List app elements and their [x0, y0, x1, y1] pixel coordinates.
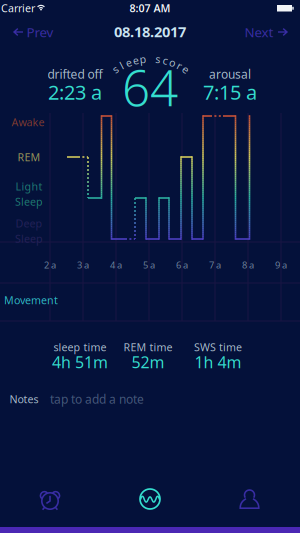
- staticText: tap to add a note: [50, 391, 144, 407]
- staticText: 7:15 a: [203, 79, 257, 105]
- staticText: s: [155, 52, 160, 66]
- staticText: sleep time: [53, 340, 106, 354]
- staticText: Awake: [11, 115, 44, 129]
- staticText: e: [183, 62, 189, 76]
- button[interactable]: tap to add a note: [0, 0, 300, 533]
- staticText: 8 a: [242, 259, 254, 271]
- staticText: 4 a: [110, 259, 122, 271]
- staticText: Next: [244, 23, 273, 41]
- staticText: 52m: [131, 351, 164, 373]
- staticText: 7 a: [209, 259, 221, 271]
- button[interactable]: Profile: [0, 0, 300, 533]
- button[interactable]: Next: [0, 0, 300, 533]
- staticText: SWS time: [194, 340, 242, 354]
- staticText: Light: [15, 179, 42, 193]
- staticText: e: [133, 53, 139, 67]
- staticText: 08.18.2017: [114, 22, 186, 41]
- staticText: s: [113, 62, 118, 76]
- staticText: 1h 4m: [194, 351, 241, 373]
- staticText: REM: [17, 150, 40, 164]
- staticText: 6 a: [176, 259, 188, 271]
- staticText: 3 a: [77, 259, 89, 271]
- staticText: e: [125, 55, 131, 70]
- staticText: 9 a: [275, 259, 287, 271]
- staticText: REM time: [123, 340, 172, 354]
- staticText: drifted off: [47, 66, 102, 82]
- staticText: 2 a: [44, 259, 56, 271]
- staticText: Movement: [4, 293, 58, 307]
- staticText: Sleep: [15, 194, 43, 209]
- staticText: l: [120, 58, 123, 73]
- staticText: p: [139, 52, 146, 66]
- button[interactable]: Prev: [0, 0, 300, 533]
- staticText: 2:23 a: [48, 79, 102, 105]
- staticText: r: [177, 58, 181, 73]
- staticText: Sleep: [15, 231, 43, 246]
- staticText: 4h 51m: [52, 351, 108, 373]
- staticText: o: [169, 55, 175, 70]
- staticText: 64: [122, 54, 178, 120]
- button[interactable]: Sleep: [0, 0, 300, 533]
- staticText: arousal: [209, 66, 251, 82]
- button[interactable]: Alarms: [0, 0, 300, 533]
- staticText: Prev: [26, 23, 53, 41]
- staticText: 5 a: [143, 259, 155, 271]
- staticText: Notes: [9, 392, 38, 406]
- staticText: 8:07 AM: [129, 1, 170, 15]
- staticText: c: [163, 53, 168, 67]
- staticText: Carrier: [1, 1, 35, 15]
- staticText: Deep: [15, 216, 42, 230]
